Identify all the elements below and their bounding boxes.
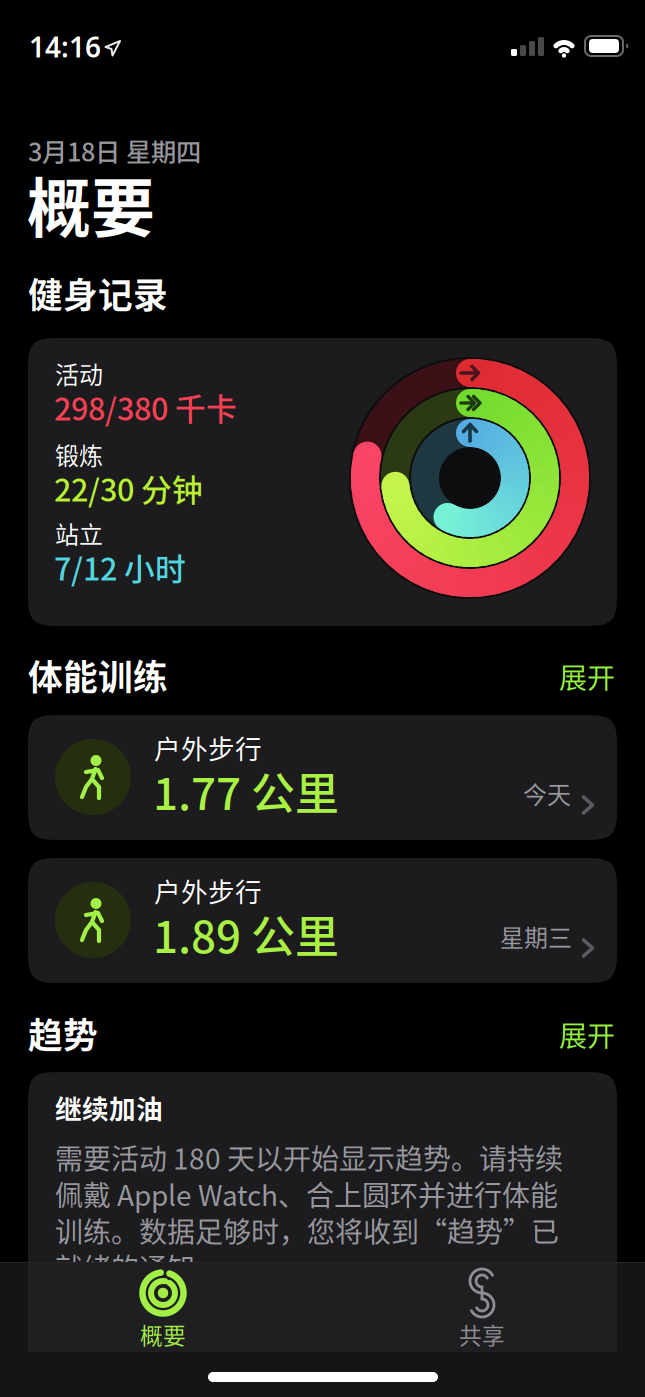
button[interactable]: 展开 xyxy=(559,1014,615,1054)
staticText: 概要 xyxy=(27,157,155,250)
staticText: 星期三 xyxy=(500,919,572,954)
button[interactable]: 共享 xyxy=(457,1268,507,1351)
staticText: 锻炼 xyxy=(55,437,103,472)
staticText: 展开 xyxy=(559,656,615,696)
staticText: 22/30 分钟 xyxy=(54,466,203,510)
button[interactable]: 户外步行 xyxy=(28,858,617,983)
staticText: 3月18日 星期四 xyxy=(28,132,201,169)
staticText: 体能训练 xyxy=(28,650,168,700)
staticText: 继续加油 xyxy=(55,1088,163,1127)
staticText: 户外步行 xyxy=(154,871,262,910)
staticText: 共享 xyxy=(459,1318,505,1351)
staticText: 概要 xyxy=(140,1318,186,1351)
staticText: 今天 xyxy=(523,776,571,811)
button[interactable]: 展开 xyxy=(559,656,615,696)
staticText: 健身记录 xyxy=(28,268,168,318)
staticText: 活动 xyxy=(55,356,103,391)
button[interactable]: 活动 xyxy=(28,338,617,626)
button[interactable]: 户外步行 xyxy=(28,715,617,840)
staticText: 298/380 千卡 xyxy=(54,385,237,429)
staticText: 需要活动 180 天以开始显示趋势。请持续 佩戴 Apple Watch、合上圆… xyxy=(55,1139,563,1285)
button[interactable]: 继续加油 xyxy=(28,1072,617,1352)
staticText: 7/12 小时 xyxy=(54,545,186,589)
staticText: 1.77 公里 xyxy=(153,759,339,823)
staticText: 1.89 公里 xyxy=(153,902,339,966)
button[interactable]: 概要 xyxy=(138,1268,188,1351)
staticText: 14:16 xyxy=(29,28,101,65)
staticText: 展开 xyxy=(559,1014,615,1054)
staticText: 户外步行 xyxy=(154,728,262,767)
staticText: 站立 xyxy=(55,516,103,551)
staticText: 趋势 xyxy=(28,1008,98,1058)
